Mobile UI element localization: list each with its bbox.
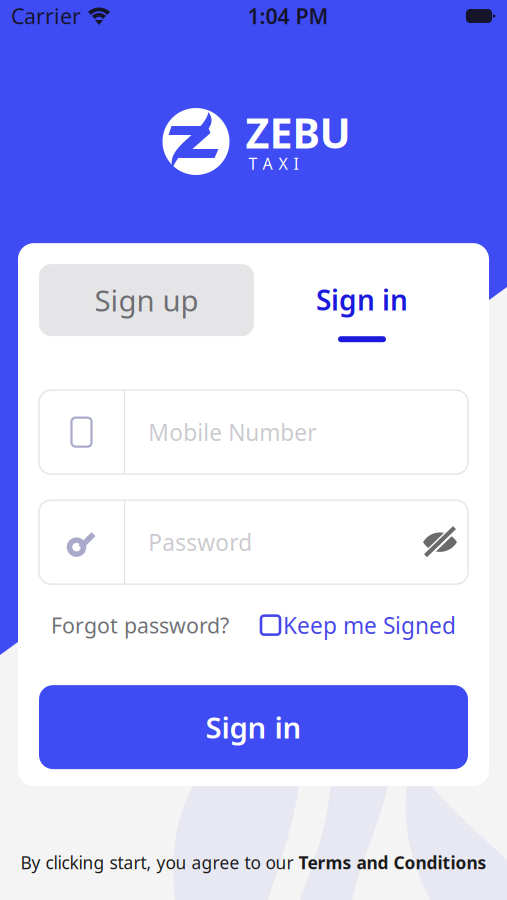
button[interactable]: Keep me Signed [261, 610, 456, 640]
staticText: Sign up [94, 281, 198, 320]
staticText: Terms and Conditions [298, 851, 486, 874]
staticText: Carrier [11, 2, 81, 30]
button[interactable]: Sign in [39, 685, 468, 769]
staticText: Sign in [205, 708, 301, 747]
staticText: Sign in [316, 281, 408, 318]
staticText: 1:04 PM [247, 2, 328, 30]
staticText: Keep me Signed [283, 610, 456, 640]
button[interactable]: Show password [412, 500, 468, 584]
button[interactable]: Sign in [315, 264, 409, 342]
staticText: Forgot password? [51, 611, 229, 639]
button[interactable]: Sign up [39, 264, 254, 336]
button[interactable]: Forgot password? [51, 611, 229, 639]
staticText: Mobile Number [148, 417, 316, 447]
staticText: ZEBU [245, 105, 350, 160]
button[interactable]: Terms and Conditions [298, 851, 486, 874]
staticText: Password [148, 527, 252, 557]
staticText: By clicking start, you agree to our [20, 851, 298, 874]
staticText: TAXI [248, 153, 298, 174]
